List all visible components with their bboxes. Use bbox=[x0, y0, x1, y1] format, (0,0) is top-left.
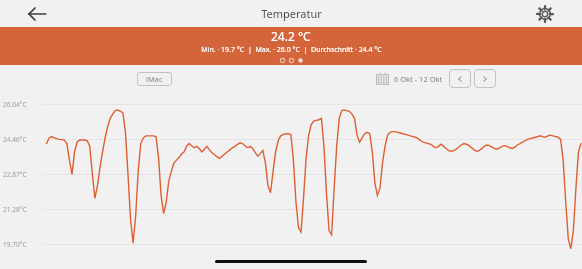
staticText: Min. · 19.7 °C | Max. · 26.0 °C | Durchs… bbox=[201, 45, 382, 55]
button[interactable]: Calendar bbox=[376, 72, 389, 85]
staticText: 21.28°C bbox=[3, 205, 27, 214]
button[interactable]: Next period bbox=[474, 69, 496, 88]
staticText: 6 Okt - 12 Okt bbox=[394, 74, 443, 84]
staticText: iMac bbox=[146, 74, 163, 84]
staticText: Temperatur bbox=[261, 6, 322, 21]
staticText: 19.70°C bbox=[3, 240, 27, 249]
staticText: 22.87°C bbox=[3, 170, 27, 179]
button[interactable]: Previous period bbox=[449, 69, 471, 88]
staticText: 26.04°C bbox=[3, 100, 27, 109]
button[interactable]: iMac bbox=[137, 72, 172, 86]
staticText: 24.46°C bbox=[3, 135, 27, 144]
staticText: 24.2 °C bbox=[271, 28, 311, 44]
button[interactable]: Settings bbox=[535, 4, 555, 24]
button[interactable]: Back bbox=[27, 4, 47, 24]
